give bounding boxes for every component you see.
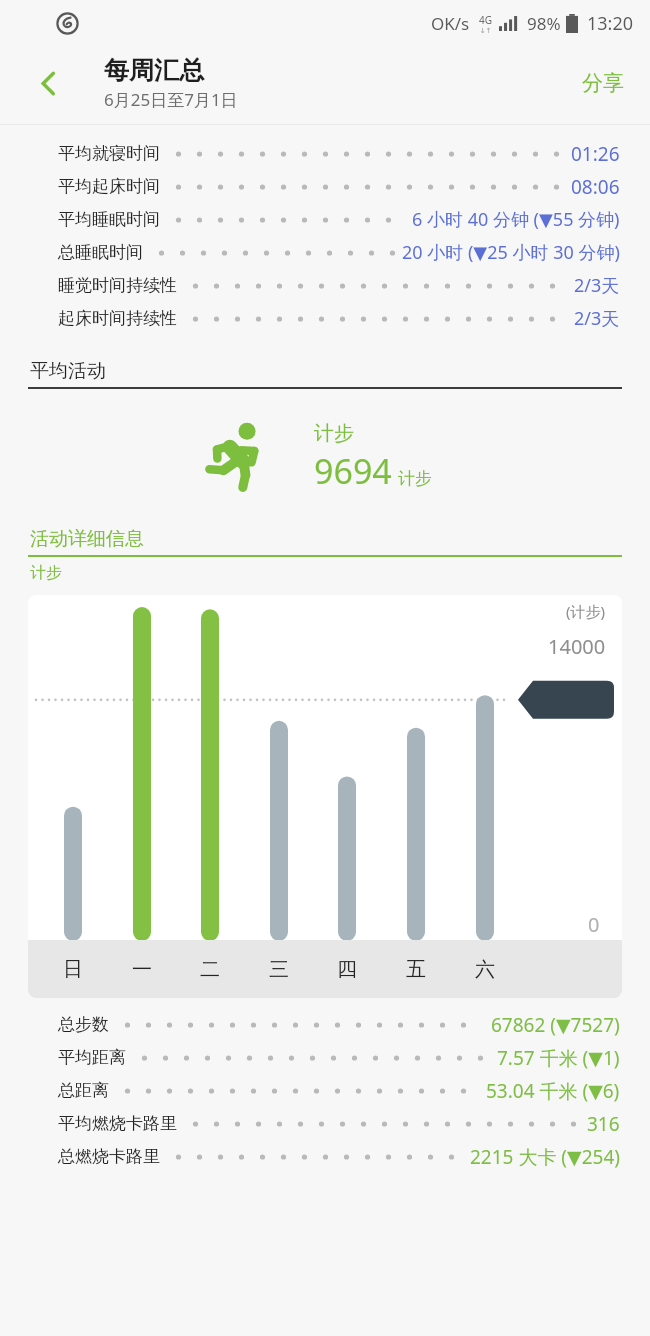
button[interactable]: 平均起床时间 [0,170,650,203]
staticText: 总距离 [58,1080,109,1101]
staticText: 平均活动 [30,359,106,383]
staticText: 14000 [548,633,606,660]
staticText: 睡觉时间持续性 [58,275,177,296]
staticText: 平均就寝时间 [58,143,160,164]
staticText: 起床时间持续性 [58,308,177,329]
button[interactable]: 平均睡眠时间 [0,203,650,236]
staticText: 平均起床时间 [58,176,160,197]
staticText: 三 [269,957,289,982]
staticText: 六 [475,957,495,982]
button[interactable]: 总距离 [0,1074,650,1107]
staticText: 计步 [314,421,354,446]
staticText: 9694 [314,448,392,494]
staticText: 日 [63,957,83,982]
staticText: 7.57 千米 (▼1) [497,1045,620,1071]
staticText: 平均睡眠时间 [58,209,160,230]
staticText: 总燃烧卡路里 [58,1146,160,1167]
staticText: 6 小时 40 分钟 (▼55 分钟) [412,207,620,232]
staticText: 98% [527,12,561,35]
staticText: 二 [200,957,220,982]
staticText: 一 [132,957,152,982]
button[interactable]: 起床时间持续性 [0,302,650,335]
staticText: 20 小时 (▼25 小时 30 分钟) [402,240,620,265]
staticText: 4G [479,13,492,27]
staticText: ↓↑ [480,27,492,35]
button[interactable]: 总燃烧卡路里 [0,1140,650,1173]
staticText: 53.04 千米 (▼6) [486,1078,620,1104]
button[interactable]: 总睡眠时间 [0,236,650,269]
staticText: 01:26 [571,141,620,167]
staticText: 总步数 [58,1014,109,1035]
staticText: 316 [587,1111,620,1137]
staticText: 活动详细信息 [30,527,144,551]
button[interactable]: Back [20,55,76,111]
staticText: 五 [406,957,426,982]
staticText: 平均距离 [58,1047,126,1068]
staticText: 6月25日至7月1日 [104,88,238,111]
other: Music [56,12,79,35]
button[interactable]: 平均距离 [0,1041,650,1074]
staticText: OK/s [431,12,470,35]
staticText: 每周汇总 [104,55,204,86]
staticText: 2/3天 [574,306,620,331]
button[interactable]: 平均燃烧卡路里 [0,1107,650,1140]
staticText: 67862 (▼7527) [491,1012,620,1038]
staticText: 0 [588,911,600,938]
staticText: 计步 [30,563,62,583]
button[interactable]: 总步数 [0,1008,650,1041]
staticText: 平均燃烧卡路里 [58,1113,177,1134]
button[interactable]: 平均就寝时间 [0,137,650,170]
button[interactable]: Steps [0,419,650,495]
staticText: 2215 大卡 (▼254) [470,1144,620,1170]
staticText: 分享 [582,70,624,96]
staticText: 13:20 [587,11,634,36]
other: Steps [198,419,274,495]
staticText: (计步) [566,601,606,621]
button[interactable]: 分享 [572,62,634,104]
button[interactable]: (计步) [28,595,622,998]
staticText: 四 [337,957,357,982]
staticText: 计步 [398,468,432,489]
staticText: 10000 [549,718,610,747]
staticText: 总睡眠时间 [58,242,143,263]
staticText: 08:06 [571,174,620,200]
button[interactable]: 睡觉时间持续性 [0,269,650,302]
staticText: 2/3天 [574,273,620,298]
